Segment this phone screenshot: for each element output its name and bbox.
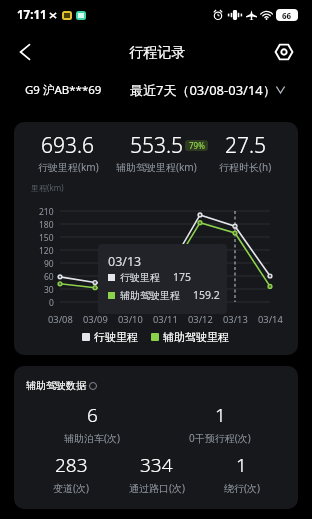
staticText: 辅助驾驶里程: [120, 289, 180, 302]
staticText: 90: [44, 258, 54, 270]
button[interactable]: 辅助驾驶数据: [26, 379, 97, 392]
staticText: 辅助驾驶数据: [26, 379, 86, 392]
staticText: 变道(次): [53, 481, 89, 495]
staticText: 里程(km): [31, 182, 64, 193]
staticText: 6: [87, 402, 98, 428]
staticText: 03/08: [48, 313, 73, 326]
staticText: 03/12: [188, 313, 213, 326]
staticText: 行驶里程(km): [38, 160, 99, 174]
staticText: 334: [140, 452, 173, 478]
button[interactable]: 最近7天（03/08-03/14）: [130, 81, 285, 99]
staticText: 553.5: [130, 131, 184, 155]
staticText: 辅助泊车(次): [64, 431, 120, 445]
staticText: 03/10: [118, 313, 143, 326]
staticText: 17:11: [17, 7, 47, 23]
staticText: 283: [55, 452, 88, 478]
staticText: 79%: [189, 140, 205, 151]
staticText: 绕行(次): [224, 481, 260, 495]
staticText: 1: [236, 452, 247, 478]
staticText: 175: [173, 270, 192, 284]
staticText: 通过路口(次): [129, 481, 185, 495]
staticText: 693.6: [41, 131, 95, 155]
staticText: 辅助驾驶里程: [163, 330, 229, 344]
staticText: 03/13: [223, 313, 248, 326]
staticText: 30: [44, 284, 54, 296]
staticText: 行驶里程: [94, 330, 138, 344]
staticText: 27.5: [225, 131, 267, 155]
staticText: 210: [39, 206, 54, 218]
staticText: 0: [49, 297, 54, 309]
staticText: 行程记录: [129, 43, 186, 61]
staticText: 180: [39, 219, 54, 231]
staticText: 159.2: [193, 288, 220, 302]
staticText: 最近7天（03/08-03/14）: [130, 81, 276, 99]
staticText: G9 沪AB***69: [25, 82, 102, 98]
staticText: 0干预行程(次): [189, 431, 251, 445]
staticText: 1: [215, 402, 226, 428]
staticText: 03/11: [153, 313, 178, 326]
staticText: 150: [39, 232, 54, 244]
staticText: 120: [39, 245, 54, 257]
button[interactable]: Back: [9, 36, 41, 68]
button[interactable]: Settings: [269, 37, 299, 67]
staticText: 03/13: [108, 253, 142, 267]
staticText: 辅助驾驶里程(km): [116, 160, 197, 174]
button[interactable]: G9 沪AB***69: [25, 82, 102, 98]
staticText: 行程时长(h): [219, 160, 272, 174]
staticText: 60: [44, 271, 54, 283]
staticText: 66: [282, 10, 292, 21]
staticText: 03/14: [258, 313, 283, 326]
staticText: 行驶里程: [120, 271, 160, 284]
staticText: 03/09: [83, 313, 108, 326]
